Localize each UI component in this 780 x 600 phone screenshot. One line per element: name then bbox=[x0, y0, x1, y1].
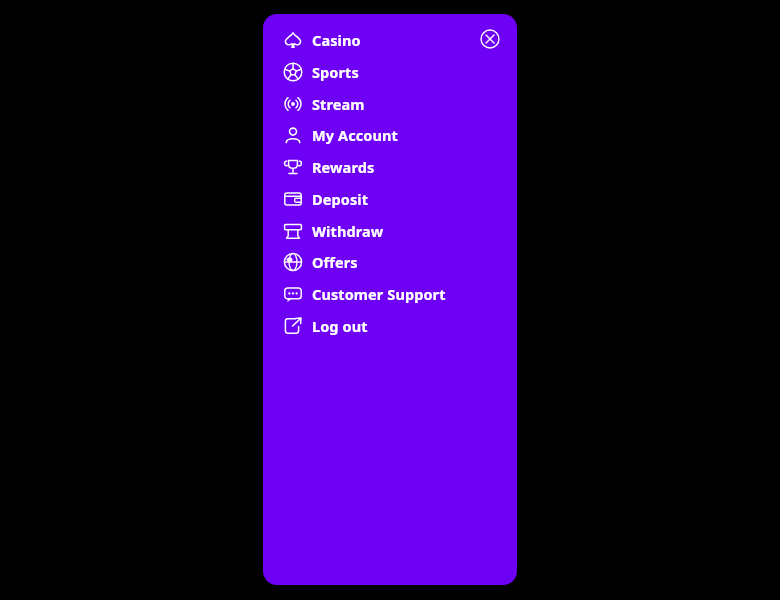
button[interactable]: Log out bbox=[263, 310, 497, 342]
button[interactable]: Close menu bbox=[475, 24, 505, 54]
button[interactable]: Casino bbox=[263, 24, 497, 56]
button[interactable]: Stream bbox=[263, 88, 497, 120]
staticText: Rewards bbox=[312, 157, 375, 177]
button[interactable]: Withdraw bbox=[263, 215, 497, 247]
staticText: Log out bbox=[312, 316, 368, 336]
staticText: Withdraw bbox=[312, 221, 384, 241]
button[interactable]: Deposit bbox=[263, 183, 497, 215]
button[interactable]: My Account bbox=[263, 119, 497, 151]
button[interactable]: Offers bbox=[263, 246, 497, 278]
staticText: Stream bbox=[312, 94, 365, 114]
button[interactable]: Rewards bbox=[263, 151, 497, 183]
staticText: Offers bbox=[312, 252, 358, 272]
button[interactable]: Customer Support bbox=[263, 278, 497, 310]
staticText: Casino bbox=[312, 30, 361, 50]
staticText: Deposit bbox=[312, 189, 369, 209]
staticText: Sports bbox=[312, 62, 359, 82]
button[interactable]: Sports bbox=[263, 56, 497, 88]
staticText: Customer Support bbox=[312, 284, 446, 304]
staticText: My Account bbox=[312, 125, 398, 145]
